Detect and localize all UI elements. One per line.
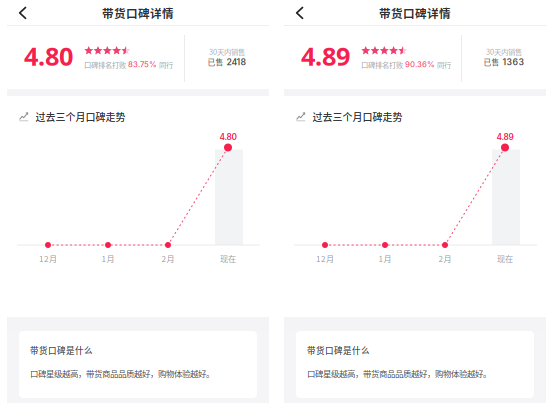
staticText: 过去三个月口碑走势 bbox=[36, 109, 126, 124]
staticText: 12月 bbox=[316, 253, 334, 264]
staticText: 4.89 bbox=[301, 39, 350, 73]
staticText: 83.75% bbox=[126, 60, 157, 69]
staticText: 4.80 bbox=[219, 132, 236, 142]
staticText: 2418 bbox=[226, 57, 246, 67]
staticText: 带货口碑详情 bbox=[379, 5, 451, 21]
staticText: 带货口碑是什么 bbox=[30, 344, 93, 356]
staticText: 1月 bbox=[378, 253, 391, 264]
staticText: 带货口碑是什么 bbox=[307, 344, 370, 356]
button[interactable]: 4.89 bbox=[284, 26, 546, 89]
staticText: 12月 bbox=[39, 253, 57, 264]
button[interactable]: 带货口碑是什么 bbox=[7, 331, 269, 403]
staticText: 同行 bbox=[435, 59, 451, 70]
staticText: 1363 bbox=[502, 57, 524, 67]
staticText: 4.80 bbox=[24, 39, 73, 73]
staticText: 现在 bbox=[497, 253, 513, 264]
staticText: 1月 bbox=[101, 253, 114, 264]
staticText: 口碑排名打败 bbox=[84, 59, 126, 70]
staticText: 30天内销售 bbox=[486, 46, 522, 57]
staticText: 口碑星级越高，带货商品品质越好，购物体验越好。 bbox=[307, 367, 491, 380]
button[interactable]: Back bbox=[7, 0, 53, 26]
staticText: 90.36% bbox=[403, 60, 435, 69]
staticText: 已售 bbox=[207, 56, 223, 68]
staticText: 同行 bbox=[157, 59, 173, 70]
staticText: 2月 bbox=[161, 253, 174, 264]
staticText: 口碑星级越高，带货商品品质越好，购物体验越好。 bbox=[30, 367, 214, 380]
button[interactable]: 带货口碑是什么 bbox=[284, 331, 546, 403]
staticText: 带货口碑详情 bbox=[102, 5, 174, 21]
button[interactable]: Back bbox=[284, 0, 330, 26]
staticText: 30天内销售 bbox=[209, 46, 245, 57]
staticText: 过去三个月口碑走势 bbox=[313, 109, 403, 124]
staticText: 现在 bbox=[220, 253, 236, 264]
staticText: 4.89 bbox=[496, 132, 513, 142]
staticText: 2月 bbox=[438, 253, 451, 264]
button[interactable]: 4.80 bbox=[7, 26, 269, 89]
staticText: 口碑排名打败 bbox=[361, 59, 403, 70]
staticText: 已售 bbox=[483, 56, 499, 68]
